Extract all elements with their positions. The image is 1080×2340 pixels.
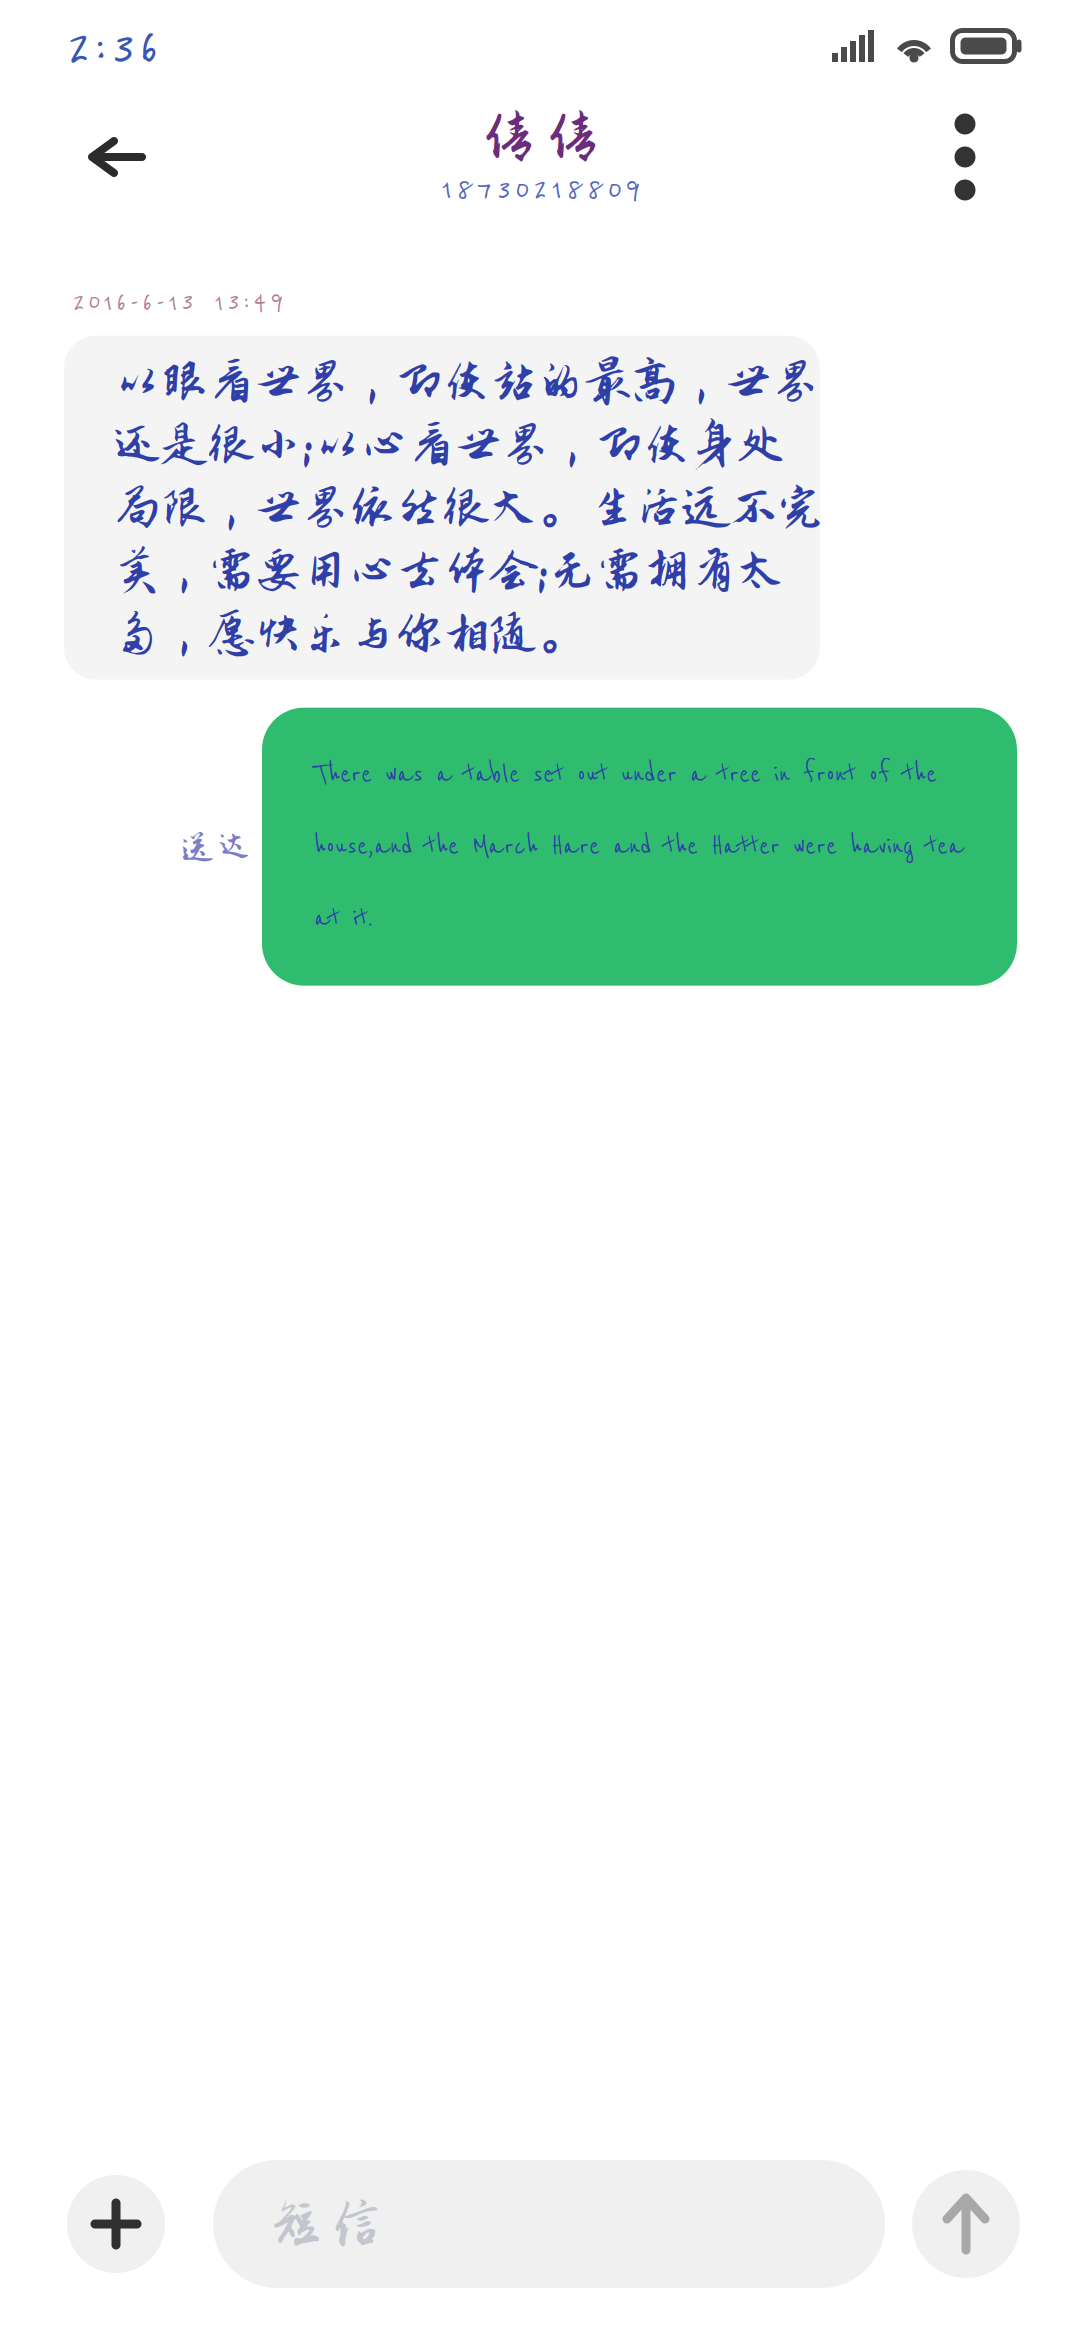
- button[interactable]: Back: [47, 92, 187, 222]
- button[interactable]: Send: [912, 2170, 1020, 2278]
- staticText: 短信: [269, 2193, 384, 2255]
- staticText: There was a table set out under a tree i…: [314, 759, 964, 935]
- staticText: 送达: [181, 828, 251, 865]
- button[interactable]: More options: [895, 92, 1035, 222]
- staticText: 2:36: [66, 13, 159, 79]
- staticText: 18730218809: [441, 169, 641, 209]
- button[interactable]: 短信: [213, 2160, 885, 2288]
- button[interactable]: Add attachment: [67, 2175, 165, 2273]
- staticText: 以眼看世界，即使站的最高，世界 还是很小;以心看世界，即使身处 局限，世界依然很…: [114, 356, 824, 660]
- staticText: 2016-6-13 13:49: [72, 284, 284, 319]
- staticText: 倩倩: [480, 105, 602, 169]
